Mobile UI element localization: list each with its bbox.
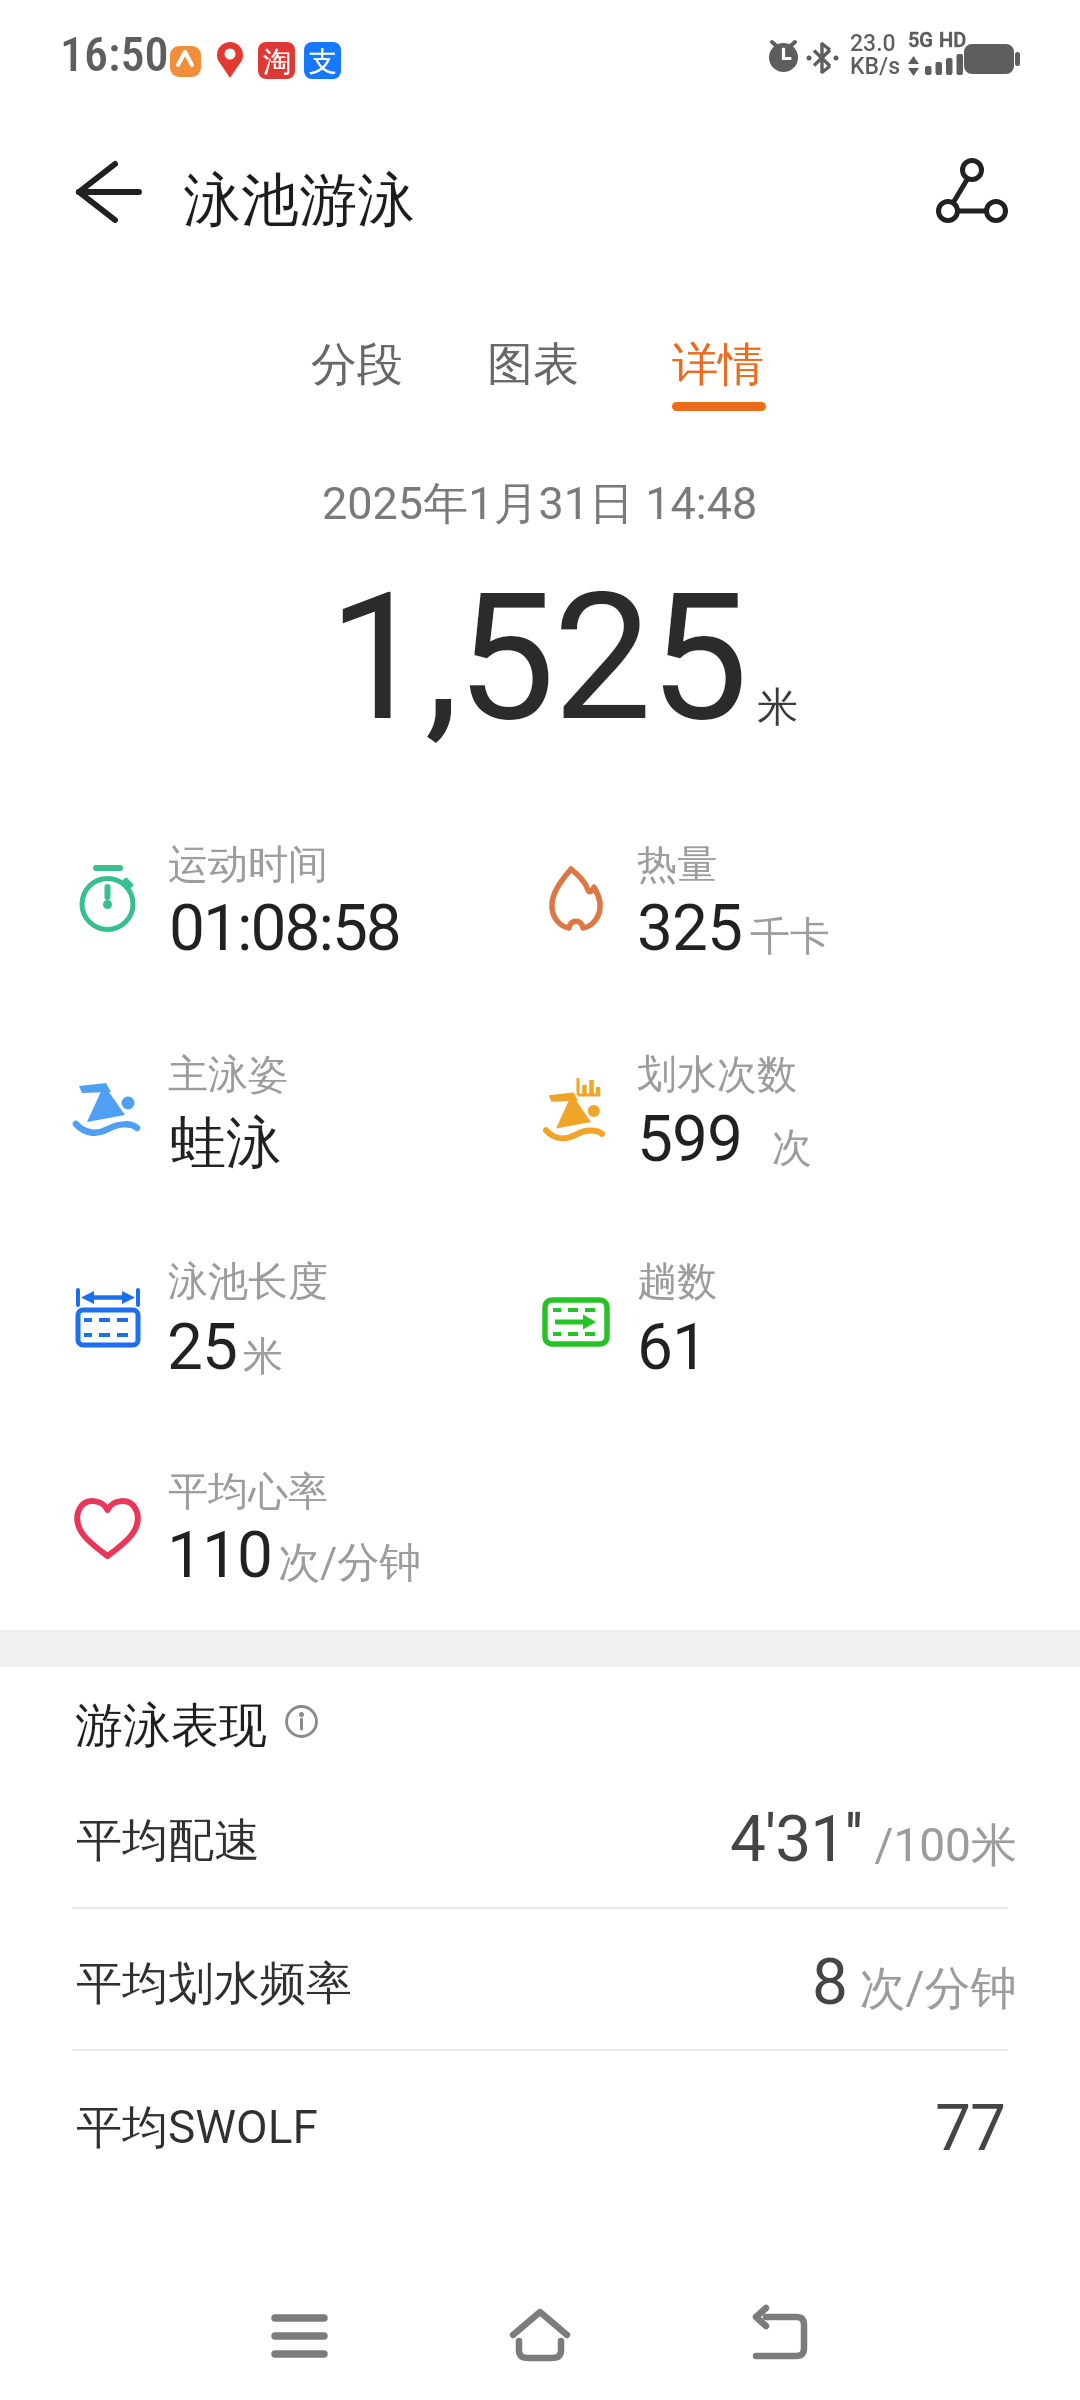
staticText: 泳池长度 (168, 1256, 328, 1306)
staticText: 77 (935, 2091, 1005, 2166)
staticText: 25 (167, 1310, 237, 1385)
button[interactable] (651, 320, 791, 420)
staticText: 详情 (672, 336, 764, 394)
staticText: 淘 (263, 44, 291, 79)
staticText: 蛙泳 (170, 1108, 282, 1179)
staticText: 平均心率 (168, 1466, 328, 1516)
staticText: 8 (812, 1945, 848, 2020)
button[interactable] (466, 320, 606, 420)
staticText: 61 (637, 1310, 707, 1385)
staticText: 平均SWOLF (76, 2099, 318, 2157)
button[interactable] (925, 140, 1025, 240)
staticText: 5G (908, 28, 933, 51)
staticText: 16:50 (60, 26, 169, 82)
staticText: 次/分钟 (848, 1960, 1017, 2018)
button[interactable] (0, 2080, 1080, 2192)
button[interactable] (0, 1935, 1080, 2047)
staticText: HD (939, 28, 967, 51)
staticText: 米 (243, 1331, 283, 1381)
staticText: 支 (309, 44, 337, 79)
staticText: 游泳表现 (75, 1696, 267, 1756)
staticText: 2025年1月31日 14:48 (322, 476, 758, 533)
button[interactable] (250, 2286, 350, 2386)
staticText: KB/s (850, 53, 901, 80)
staticText: 泳池游泳 (183, 164, 415, 237)
staticText: 325 (637, 891, 742, 966)
staticText: 分段 (311, 336, 403, 394)
button[interactable] (490, 2286, 590, 2386)
staticText: 平均划水频率 (76, 1955, 352, 2013)
staticText: 4'31'' (730, 1802, 863, 1877)
staticText: 千卡 (750, 911, 830, 961)
staticText: 599 (637, 1102, 742, 1177)
staticText: 米 (757, 682, 798, 734)
staticText: 图表 (487, 336, 579, 394)
staticText: /100米 (863, 1817, 1017, 1875)
staticText: 次/分钟 (278, 1537, 422, 1590)
button[interactable] (730, 2286, 830, 2386)
staticText: 01:08:58 (169, 891, 400, 966)
staticText: 趟数 (637, 1256, 717, 1306)
staticText: 主泳姿 (168, 1049, 288, 1099)
button[interactable] (0, 1790, 1080, 1905)
staticText: 次 (772, 1122, 812, 1172)
staticText: 1,525 (328, 555, 746, 761)
staticText: 23.0 (850, 30, 896, 57)
staticText: 热量 (637, 839, 717, 889)
staticText: 划水次数 (637, 1049, 797, 1099)
staticText: 运动时间 (168, 839, 328, 889)
button[interactable] (290, 320, 430, 420)
staticText: 平均配速 (76, 1812, 260, 1870)
staticText: 110 (167, 1518, 272, 1593)
button[interactable] (55, 150, 165, 240)
